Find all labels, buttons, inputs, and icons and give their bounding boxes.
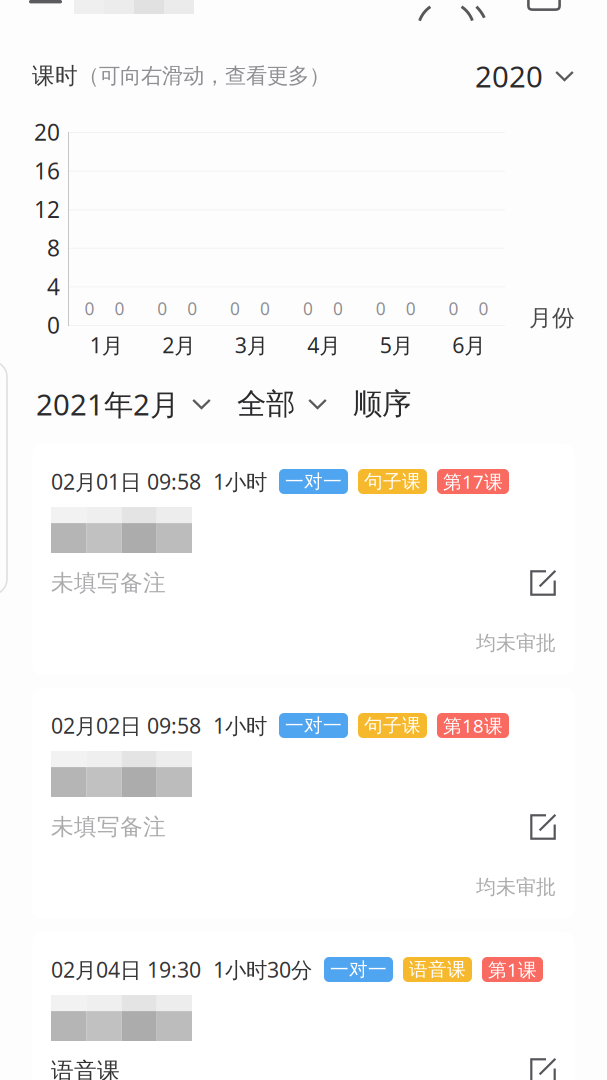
button[interactable]: 02月04日 19:30 1小时30分 xyxy=(32,932,575,1080)
button[interactable]: 02月01日 09:58 1小时 xyxy=(32,444,575,675)
staticText: 0 xyxy=(260,297,270,320)
staticText: 2021年2月 xyxy=(36,384,179,423)
staticText: 0 xyxy=(47,310,60,340)
staticText: 2月 xyxy=(162,331,195,359)
staticText: 4月 xyxy=(307,331,340,359)
button[interactable]: 顺序 xyxy=(353,376,411,432)
staticText: 0 xyxy=(479,297,489,320)
staticText: 均未审批 xyxy=(476,631,556,655)
staticText: 5月 xyxy=(380,331,413,359)
staticText: 第18课 xyxy=(443,713,503,738)
staticText: 一对一 xyxy=(285,714,342,737)
staticText: 3月 xyxy=(235,331,268,359)
button[interactable]: 2021年2月 xyxy=(36,374,211,433)
staticText: 课时 xyxy=(32,62,78,90)
staticText: 0 xyxy=(303,297,313,320)
staticText: 句子课 xyxy=(364,470,421,493)
staticText: 20 xyxy=(34,117,60,147)
staticText: 第1课 xyxy=(488,957,537,982)
staticText: 4 xyxy=(47,271,60,301)
staticText: 0 xyxy=(84,297,94,320)
staticText: 均未审批 xyxy=(476,875,556,899)
staticText: 8 xyxy=(47,233,60,263)
staticText: 0 xyxy=(376,297,386,320)
staticText: 未填写备注 xyxy=(51,813,166,841)
staticText: 一对一 xyxy=(330,958,387,981)
button[interactable]: 02月02日 09:58 1小时 xyxy=(32,688,575,919)
staticText: 0 xyxy=(157,297,167,320)
staticText: 0 xyxy=(333,297,343,320)
button[interactable]: Back xyxy=(29,0,62,3)
button[interactable]: 2020 xyxy=(475,48,574,103)
staticText: 全部 xyxy=(237,386,295,422)
staticText: 02月04日 19:30 1小时30分 xyxy=(51,955,312,984)
staticText: 0 xyxy=(230,297,240,320)
staticText: 2020 xyxy=(475,56,543,95)
staticText: 6月 xyxy=(452,331,485,359)
staticText: 顺序 xyxy=(353,386,411,422)
staticText: 一对一 xyxy=(285,470,342,493)
staticText: 语音课 xyxy=(409,958,466,981)
staticText: 未填写备注 xyxy=(51,569,166,597)
staticText: 02月01日 09:58 1小时 xyxy=(51,467,267,496)
staticText: 12 xyxy=(34,194,60,224)
staticText: 02月02日 09:58 1小时 xyxy=(51,711,267,740)
staticText: （可向右滑动，查看更多） xyxy=(78,63,330,89)
staticText: 月份 xyxy=(529,304,575,332)
staticText: 句子课 xyxy=(364,714,421,737)
button[interactable]: Messages xyxy=(527,0,561,11)
staticText: 语音课 xyxy=(51,1057,120,1080)
staticText: 16 xyxy=(34,155,60,186)
staticText: 0 xyxy=(187,297,197,320)
button[interactable]: 全部 xyxy=(237,376,327,432)
staticText: 1月 xyxy=(90,331,123,359)
staticText: 第17课 xyxy=(443,469,503,494)
staticText: 0 xyxy=(449,297,459,320)
button[interactable]: Members xyxy=(410,0,476,11)
staticText: 0 xyxy=(406,297,416,320)
staticText: 0 xyxy=(114,297,124,320)
